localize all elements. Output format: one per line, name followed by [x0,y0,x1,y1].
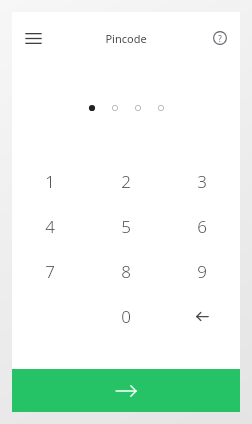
staticText: 4 [45,215,55,238]
staticText: 7 [45,260,55,283]
button[interactable]: 2 [88,159,164,204]
staticText: 2 [121,170,131,193]
staticText: 9 [197,260,207,283]
button[interactable]: 3 [164,159,240,204]
button[interactable]: 7 [12,249,88,294]
button[interactable]: Menu [18,23,48,53]
button[interactable]: 6 [164,204,240,249]
button[interactable]: 0 [88,294,164,339]
button[interactable]: 9 [164,249,240,294]
staticText: 5 [121,215,131,238]
button[interactable]: 1 [12,159,88,204]
button[interactable]: 8 [88,249,164,294]
staticText: ? [218,33,222,44]
staticText: 6 [197,215,207,238]
button[interactable]: Continue [12,369,240,412]
button[interactable]: 5 [88,204,164,249]
staticText: 3 [197,170,207,193]
staticText: Pincode [105,31,147,46]
staticText: 1 [45,170,55,193]
button[interactable]: Help [206,24,234,52]
staticText: 8 [121,260,131,283]
staticText: 0 [121,305,131,328]
button[interactable]: Backspace [164,294,240,339]
button[interactable]: 4 [12,204,88,249]
